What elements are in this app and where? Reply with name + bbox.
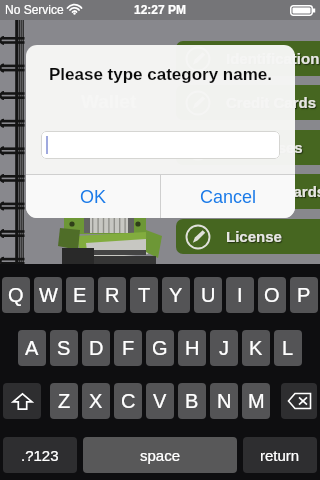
staticText: O — [264, 284, 280, 306]
button[interactable]: R — [98, 277, 126, 313]
staticText: OK — [80, 187, 107, 207]
staticText: D — [89, 337, 104, 359]
button[interactable]: Z — [50, 383, 78, 419]
staticText: Q — [8, 284, 24, 306]
button[interactable]: S — [50, 330, 78, 366]
button[interactable]: P — [290, 277, 318, 313]
button[interactable]: X — [82, 383, 110, 419]
staticText: Cancel — [200, 187, 257, 207]
staticText: S — [57, 337, 71, 359]
button[interactable]: O — [258, 277, 286, 313]
button[interactable]: return — [243, 437, 317, 473]
button[interactable]: A — [18, 330, 46, 366]
button[interactable] — [41, 131, 280, 159]
button[interactable]: Backspace — [281, 383, 317, 419]
button[interactable]: Shift — [3, 383, 41, 419]
button[interactable]: D — [82, 330, 110, 366]
staticText: X — [89, 390, 103, 412]
button[interactable]: U — [194, 277, 222, 313]
staticText: G — [152, 337, 168, 359]
staticText: Addresses — [226, 139, 303, 156]
staticText: return — [260, 447, 300, 464]
staticText: N — [217, 390, 232, 412]
button[interactable]: W — [34, 277, 62, 313]
staticText: 12:27 PM — [0, 3, 320, 16]
button[interactable]: C — [114, 383, 142, 419]
button[interactable]: Y — [162, 277, 190, 313]
button[interactable]: T — [130, 277, 158, 313]
staticText: J — [219, 337, 229, 359]
staticText: Identification — [226, 50, 320, 67]
button[interactable]: space — [83, 437, 237, 473]
staticText: U — [201, 284, 216, 306]
staticText: Loyalty Cards — [226, 183, 320, 200]
staticText: R — [105, 284, 120, 306]
button[interactable]: M — [242, 383, 270, 419]
button[interactable]: Identification — [176, 41, 320, 76]
button[interactable]: L — [274, 330, 302, 366]
button[interactable]: J — [210, 330, 238, 366]
button[interactable]: G — [146, 330, 174, 366]
staticText: Please type category name. — [26, 65, 295, 84]
staticText: M — [248, 390, 265, 412]
button[interactable]: H — [178, 330, 206, 366]
button[interactable]: K — [242, 330, 270, 366]
button[interactable]: V — [146, 383, 174, 419]
staticText: W — [39, 284, 58, 306]
staticText: Y — [169, 284, 183, 306]
staticText: E — [73, 284, 87, 306]
staticText: L — [282, 337, 294, 359]
staticText: B — [185, 390, 199, 412]
button[interactable]: I — [226, 277, 254, 313]
staticText: .?123 — [21, 447, 59, 464]
staticText: C — [121, 390, 136, 412]
button[interactable]: B — [178, 383, 206, 419]
button[interactable]: Loyalty Cards — [176, 174, 320, 209]
staticText: space — [140, 447, 181, 464]
staticText: V — [153, 390, 167, 412]
staticText: Z — [58, 390, 71, 412]
staticText: License — [226, 228, 282, 245]
button[interactable]: .?123 — [3, 437, 77, 473]
staticText: H — [185, 337, 200, 359]
staticText: T — [138, 284, 151, 306]
button[interactable]: E — [66, 277, 94, 313]
staticText: A — [25, 337, 39, 359]
staticText: K — [249, 337, 263, 359]
staticText: P — [297, 284, 311, 306]
button[interactable]: License — [176, 219, 320, 254]
button[interactable]: F — [114, 330, 142, 366]
button[interactable]: N — [210, 383, 238, 419]
staticText: No Service — [5, 3, 64, 16]
button[interactable]: OK — [26, 175, 160, 218]
button[interactable]: Addresses — [176, 130, 320, 165]
button[interactable]: Credit Cards — [176, 85, 320, 120]
button[interactable]: Q — [2, 277, 30, 313]
button[interactable]: Cancel — [161, 175, 295, 218]
staticText: F — [122, 337, 135, 359]
staticText: I — [237, 284, 243, 306]
staticText: Credit Cards — [226, 94, 317, 111]
